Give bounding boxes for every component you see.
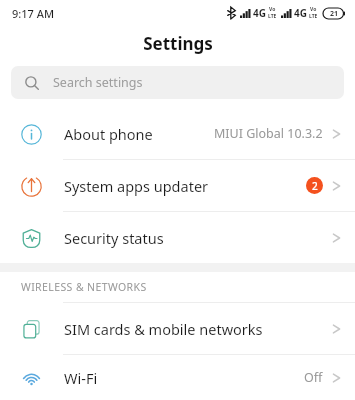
staticText: LTE (268, 13, 277, 20)
staticText: Settings (143, 32, 213, 55)
staticText: Vo (269, 6, 276, 13)
button[interactable]: Security status (0, 212, 355, 263)
staticText: SIM cards & mobile networks (64, 319, 331, 339)
staticText: Search settings (53, 74, 143, 91)
staticText: LTE (309, 13, 318, 20)
button[interactable]: About phone (0, 108, 355, 159)
staticText: Security status (64, 228, 331, 248)
staticText: About phone (64, 124, 214, 144)
button[interactable]: System apps updater (0, 160, 355, 211)
staticText: WIRELESS & NETWORKS (21, 280, 147, 294)
staticText: 4G (294, 6, 307, 20)
staticText: 4G (253, 6, 266, 20)
button[interactable]: Wi-Fi (0, 355, 355, 400)
staticText: 9:17 AM (12, 6, 55, 21)
staticText: Wi-Fi (64, 368, 304, 388)
button[interactable]: Search settings (11, 66, 344, 99)
staticText: Off (304, 369, 323, 386)
staticText: MIUI Global 10.3.2 (214, 125, 323, 142)
button[interactable]: SIM cards & mobile networks (0, 303, 355, 354)
staticText: 2 (312, 179, 318, 193)
staticText: Vo (310, 6, 317, 13)
staticText: 21 (330, 9, 339, 19)
staticText: System apps updater (64, 176, 306, 196)
